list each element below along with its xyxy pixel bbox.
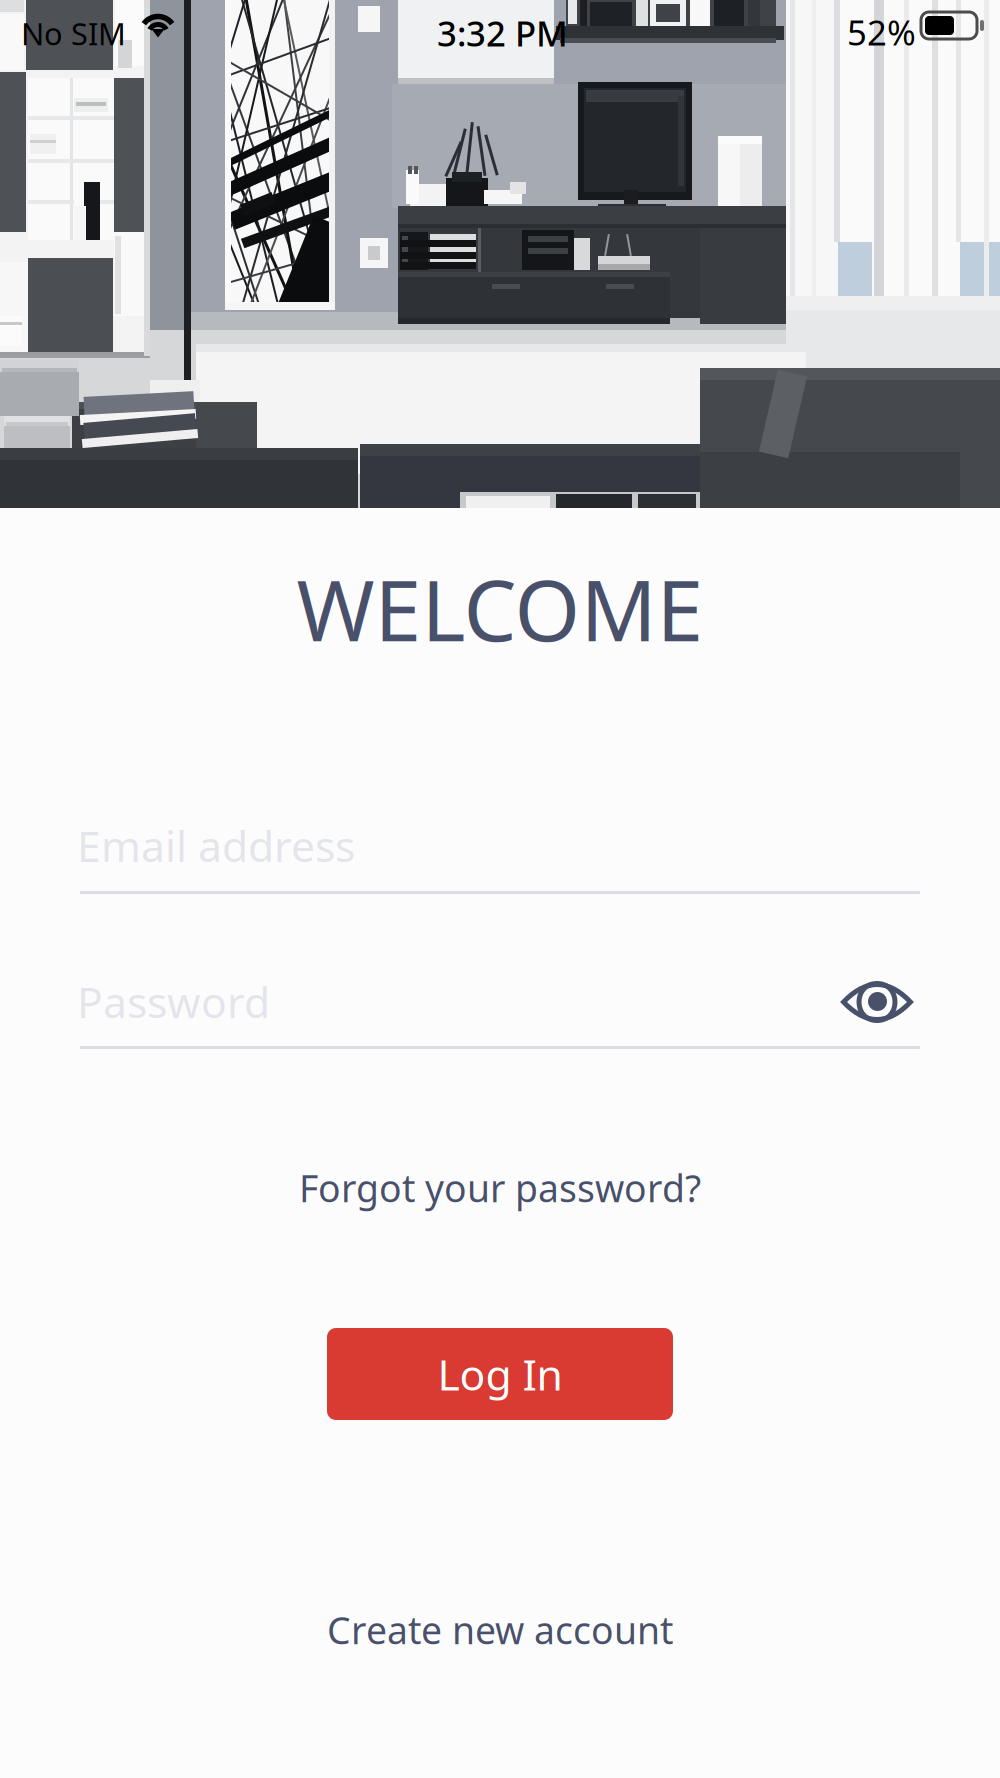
staticText: Email address [77, 817, 355, 874]
staticText: 3:32 PM [437, 10, 568, 56]
staticText: WELCOME [296, 553, 703, 664]
button[interactable]: Forgot your password? [299, 1163, 701, 1213]
staticText: No SIM [21, 13, 126, 54]
staticText: 52% [847, 9, 916, 55]
button[interactable]: Log In [327, 1328, 673, 1420]
button[interactable]: Show password [841, 981, 913, 1023]
button[interactable]: Create new account [327, 1605, 673, 1655]
staticText: Forgot your password? [299, 1163, 701, 1213]
staticText: Create new account [327, 1605, 673, 1655]
staticText: Password [77, 973, 270, 1030]
staticText: Log In [437, 1346, 562, 1402]
